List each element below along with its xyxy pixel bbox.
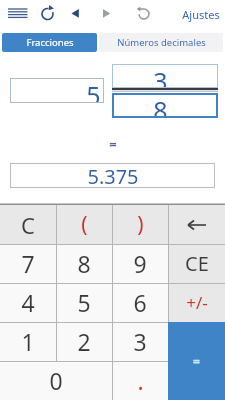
button[interactable]: [38, 2, 60, 26]
button[interactable]: +/-: [168, 283, 225, 322]
staticText: =: [193, 353, 200, 369]
button[interactable]: 9: [112, 244, 168, 283]
button[interactable]: 3: [112, 64, 218, 88]
staticText: 5.375: [87, 163, 139, 188]
button[interactable]: 6: [112, 283, 168, 322]
staticText: .: [137, 365, 144, 396]
staticText: 3: [133, 326, 147, 357]
staticText: 7: [21, 248, 35, 279]
staticText: 5: [86, 78, 101, 103]
button[interactable]: (: [56, 205, 112, 244]
staticText: CE: [185, 250, 209, 277]
staticText: ): [137, 210, 144, 239]
staticText: 5: [77, 287, 91, 318]
staticText: +/-: [186, 291, 208, 314]
staticText: C: [21, 210, 35, 240]
button[interactable]: [4, 2, 32, 26]
button[interactable]: 2: [56, 322, 112, 361]
staticText: =: [109, 135, 117, 150]
button[interactable]: Fracciones: [2, 33, 97, 52]
button[interactable]: Números decimales: [99, 33, 223, 52]
staticText: 6: [133, 287, 147, 318]
button[interactable]: [95, 2, 117, 26]
button[interactable]: 4: [0, 283, 56, 322]
button[interactable]: [168, 205, 225, 244]
button[interactable]: 5.375: [10, 163, 215, 188]
button[interactable]: 7: [0, 244, 56, 283]
staticText: Números decimales: [117, 36, 206, 49]
staticText: 3: [153, 64, 168, 88]
staticText: 2: [77, 326, 91, 357]
button[interactable]: 0: [0, 361, 112, 400]
button[interactable]: 1: [0, 322, 56, 361]
staticText: (: [81, 210, 88, 239]
staticText: 4: [21, 287, 35, 318]
staticText: 8: [153, 93, 168, 118]
button[interactable]: =: [168, 322, 225, 400]
staticText: 8: [77, 248, 91, 279]
staticText: 0: [49, 365, 63, 396]
staticText: 1: [21, 326, 35, 357]
button[interactable]: 3: [112, 322, 168, 361]
staticText: Ajustes: [182, 7, 220, 22]
button[interactable]: C: [0, 205, 56, 244]
button[interactable]: 8: [56, 244, 112, 283]
button[interactable]: CE: [168, 244, 225, 283]
staticText: Fracciones: [26, 36, 74, 49]
button[interactable]: Ajustes: [178, 2, 223, 26]
button[interactable]: .: [112, 361, 168, 400]
button[interactable]: 5: [56, 283, 112, 322]
button[interactable]: 8: [112, 93, 218, 118]
button[interactable]: 5: [10, 78, 104, 103]
button[interactable]: [131, 2, 155, 26]
button[interactable]: ): [112, 205, 168, 244]
staticText: 9: [133, 248, 147, 279]
button[interactable]: [64, 2, 86, 26]
